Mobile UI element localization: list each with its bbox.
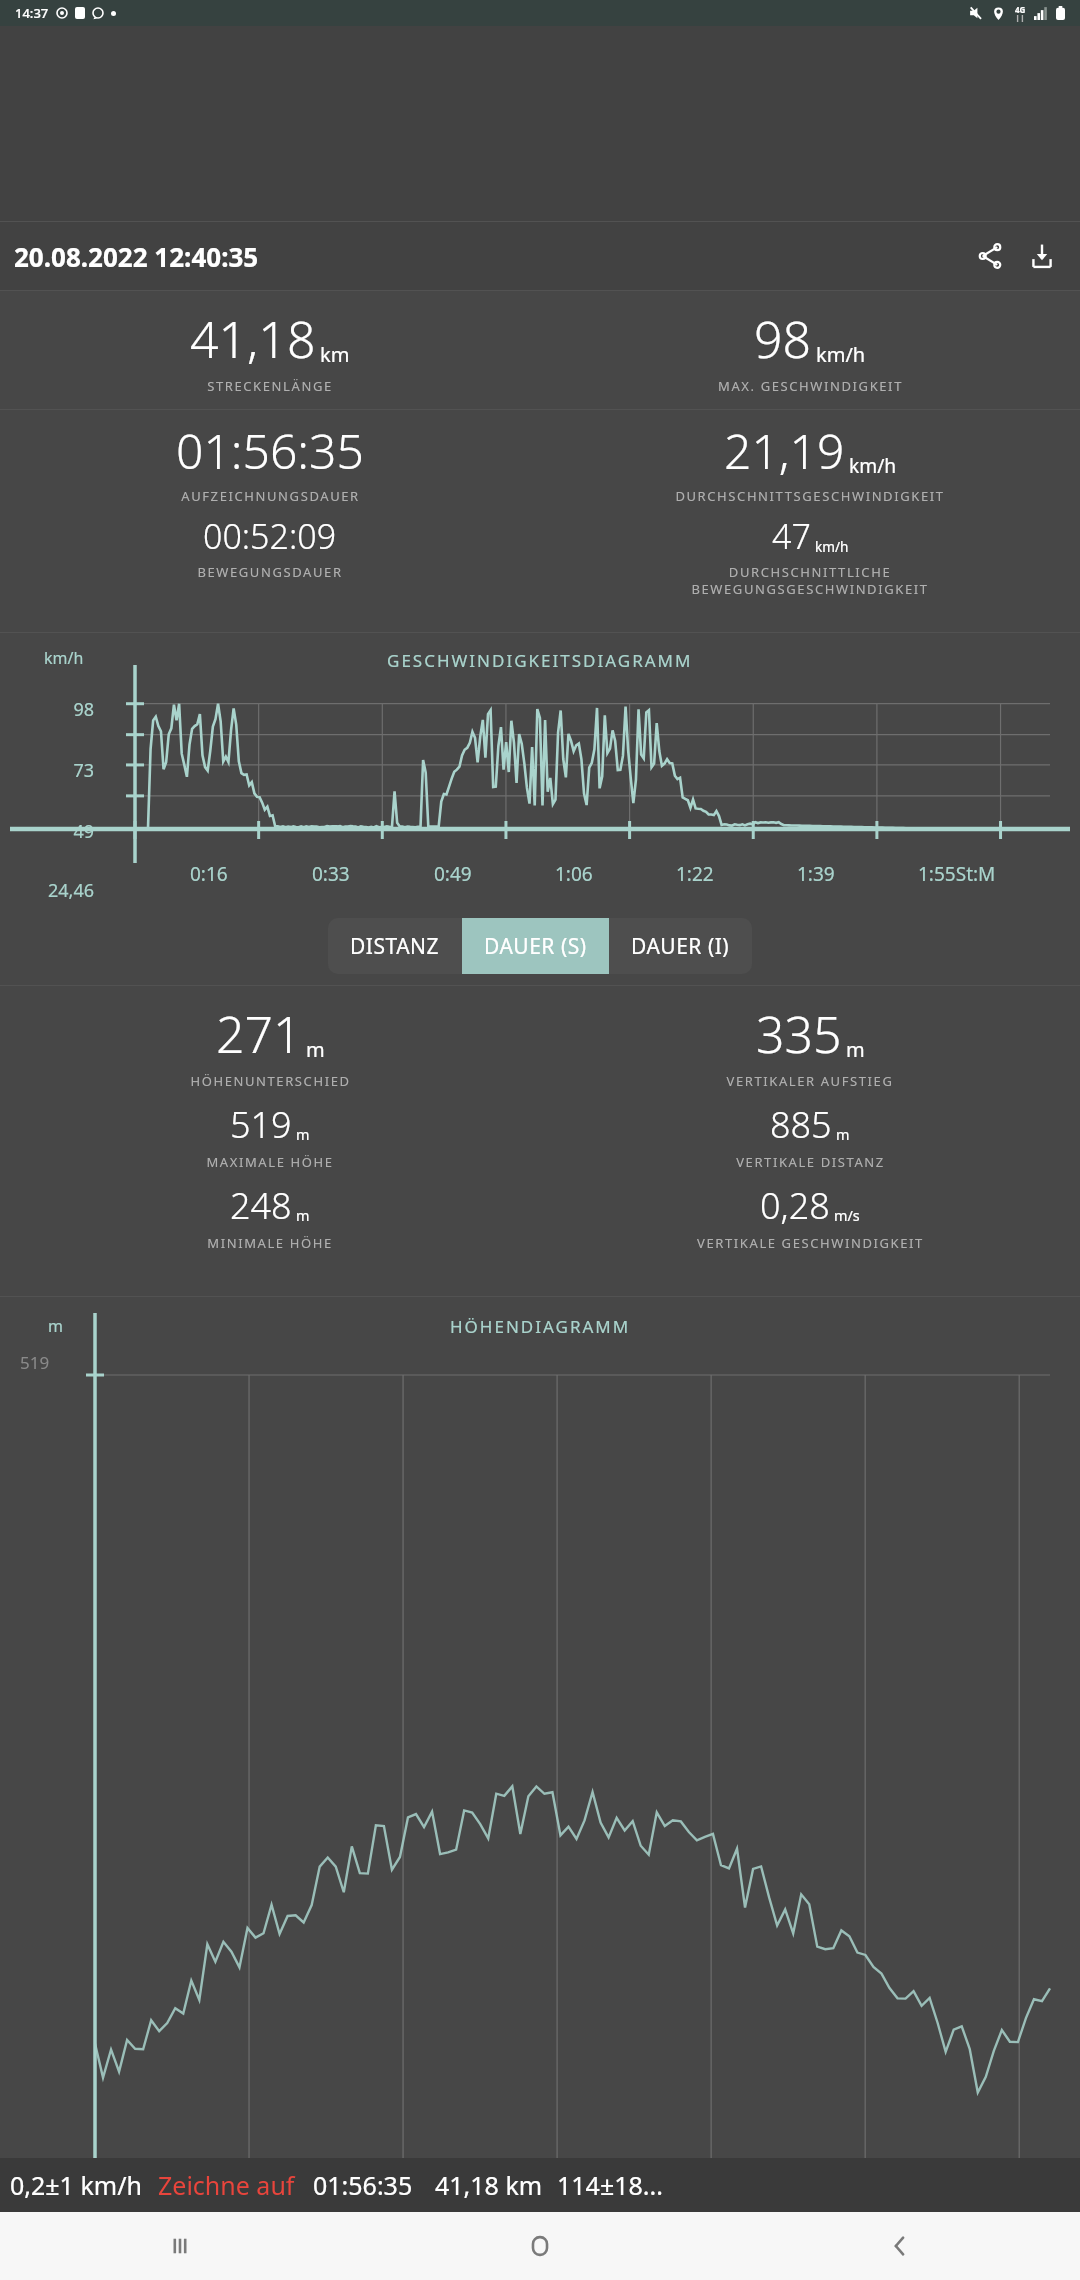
button[interactable]: Back	[720, 2212, 1080, 2280]
staticText: DURCHSCHNITTLICHE BEWEGUNGSGESCHWINDIGKE…	[691, 563, 929, 598]
staticText: 1:06	[555, 861, 672, 887]
staticText: 41,18 km	[435, 2168, 543, 2202]
staticText: MAXIMALE HÖHE	[206, 1153, 334, 1171]
staticText: 335	[756, 1000, 842, 1068]
staticText: 0,28	[760, 1181, 830, 1230]
staticText: 519	[230, 1100, 292, 1149]
staticText: DAUER (S)	[484, 932, 587, 961]
staticText: Zeichne auf	[158, 2168, 295, 2202]
staticText: VERTIKALE GESCHWINDIGKEIT	[697, 1234, 924, 1252]
staticText: BEWEGUNGSDAUER	[197, 563, 343, 581]
staticText: km	[320, 341, 350, 368]
staticText: 0:16	[190, 861, 308, 887]
staticText: 14:37	[15, 4, 49, 22]
staticText: 248	[230, 1181, 292, 1230]
staticText: DAUER (I)	[631, 932, 730, 961]
button[interactable]: Share	[964, 230, 1016, 282]
staticText: DURCHSCHNITTSGESCHWINDIGKEIT	[675, 487, 945, 505]
button[interactable]: DAUER (I)	[609, 918, 752, 974]
staticText: 20.08.2022 12:40:35	[14, 239, 259, 274]
staticText: 1:55St:M	[918, 861, 1076, 887]
button[interactable]: DISTANZ	[328, 918, 462, 974]
button[interactable]: Zeichne auf	[158, 2168, 295, 2202]
staticText: MAX. GESCHWINDIGKEIT	[718, 377, 903, 395]
button[interactable]: DAUER (S)	[462, 918, 609, 974]
button[interactable]: Recents	[0, 2212, 360, 2280]
staticText: 49	[14, 819, 94, 844]
staticText: 01:56:35	[176, 418, 364, 483]
staticText: MINIMALE HÖHE	[207, 1234, 333, 1252]
staticText: 98	[14, 697, 94, 722]
staticText: 1:39	[797, 861, 914, 887]
staticText: km/h	[44, 647, 84, 669]
staticText: GESCHWINDIGKEITSDIAGRAMM	[387, 649, 693, 672]
staticText: 519	[20, 1351, 50, 1374]
staticText: 0,2±1 km/h	[10, 2168, 142, 2202]
staticText: 885	[770, 1100, 832, 1149]
staticText: 01:56:35	[313, 2168, 413, 2202]
staticText: HÖHENUNTERSCHIED	[190, 1072, 351, 1090]
staticText: m	[846, 1036, 865, 1063]
staticText: km/h	[849, 452, 897, 478]
staticText: 1:22	[676, 861, 793, 887]
button[interactable]: Download	[1016, 230, 1068, 282]
staticText: 41,18	[190, 305, 316, 373]
staticText: m	[296, 1125, 310, 1145]
staticText: VERTIKALE DISTANZ	[736, 1153, 885, 1171]
staticText: HÖHENDIAGRAMM	[450, 1315, 631, 1338]
staticText: DISTANZ	[350, 932, 440, 961]
staticText: km/h	[816, 341, 866, 368]
staticText: 47	[772, 513, 811, 559]
staticText: 0:49	[434, 861, 551, 887]
staticText: 271	[216, 1000, 302, 1068]
staticText: m	[48, 1315, 63, 1337]
staticText: 114±18...	[557, 2168, 663, 2202]
staticText: m	[836, 1125, 850, 1145]
staticText: km/h	[815, 537, 849, 556]
staticText: 4G	[1015, 4, 1026, 15]
staticText: m	[306, 1036, 325, 1063]
staticText: m	[296, 1206, 310, 1226]
staticText: 0:33	[312, 861, 430, 887]
staticText: 24,46	[14, 878, 94, 903]
staticText: 73	[14, 758, 94, 783]
button[interactable]: Home	[360, 2212, 720, 2280]
staticText: STRECKENLÄNGE	[207, 377, 333, 395]
staticText: m/s	[834, 1206, 860, 1226]
staticText: AUFZEICHNUNGSDAUER	[181, 487, 360, 505]
staticText: 00:52:09	[203, 513, 337, 559]
staticText: 21,19	[724, 418, 845, 483]
staticText: 98	[754, 305, 812, 373]
staticText: VERTIKALER AUFSTIEG	[726, 1072, 894, 1090]
